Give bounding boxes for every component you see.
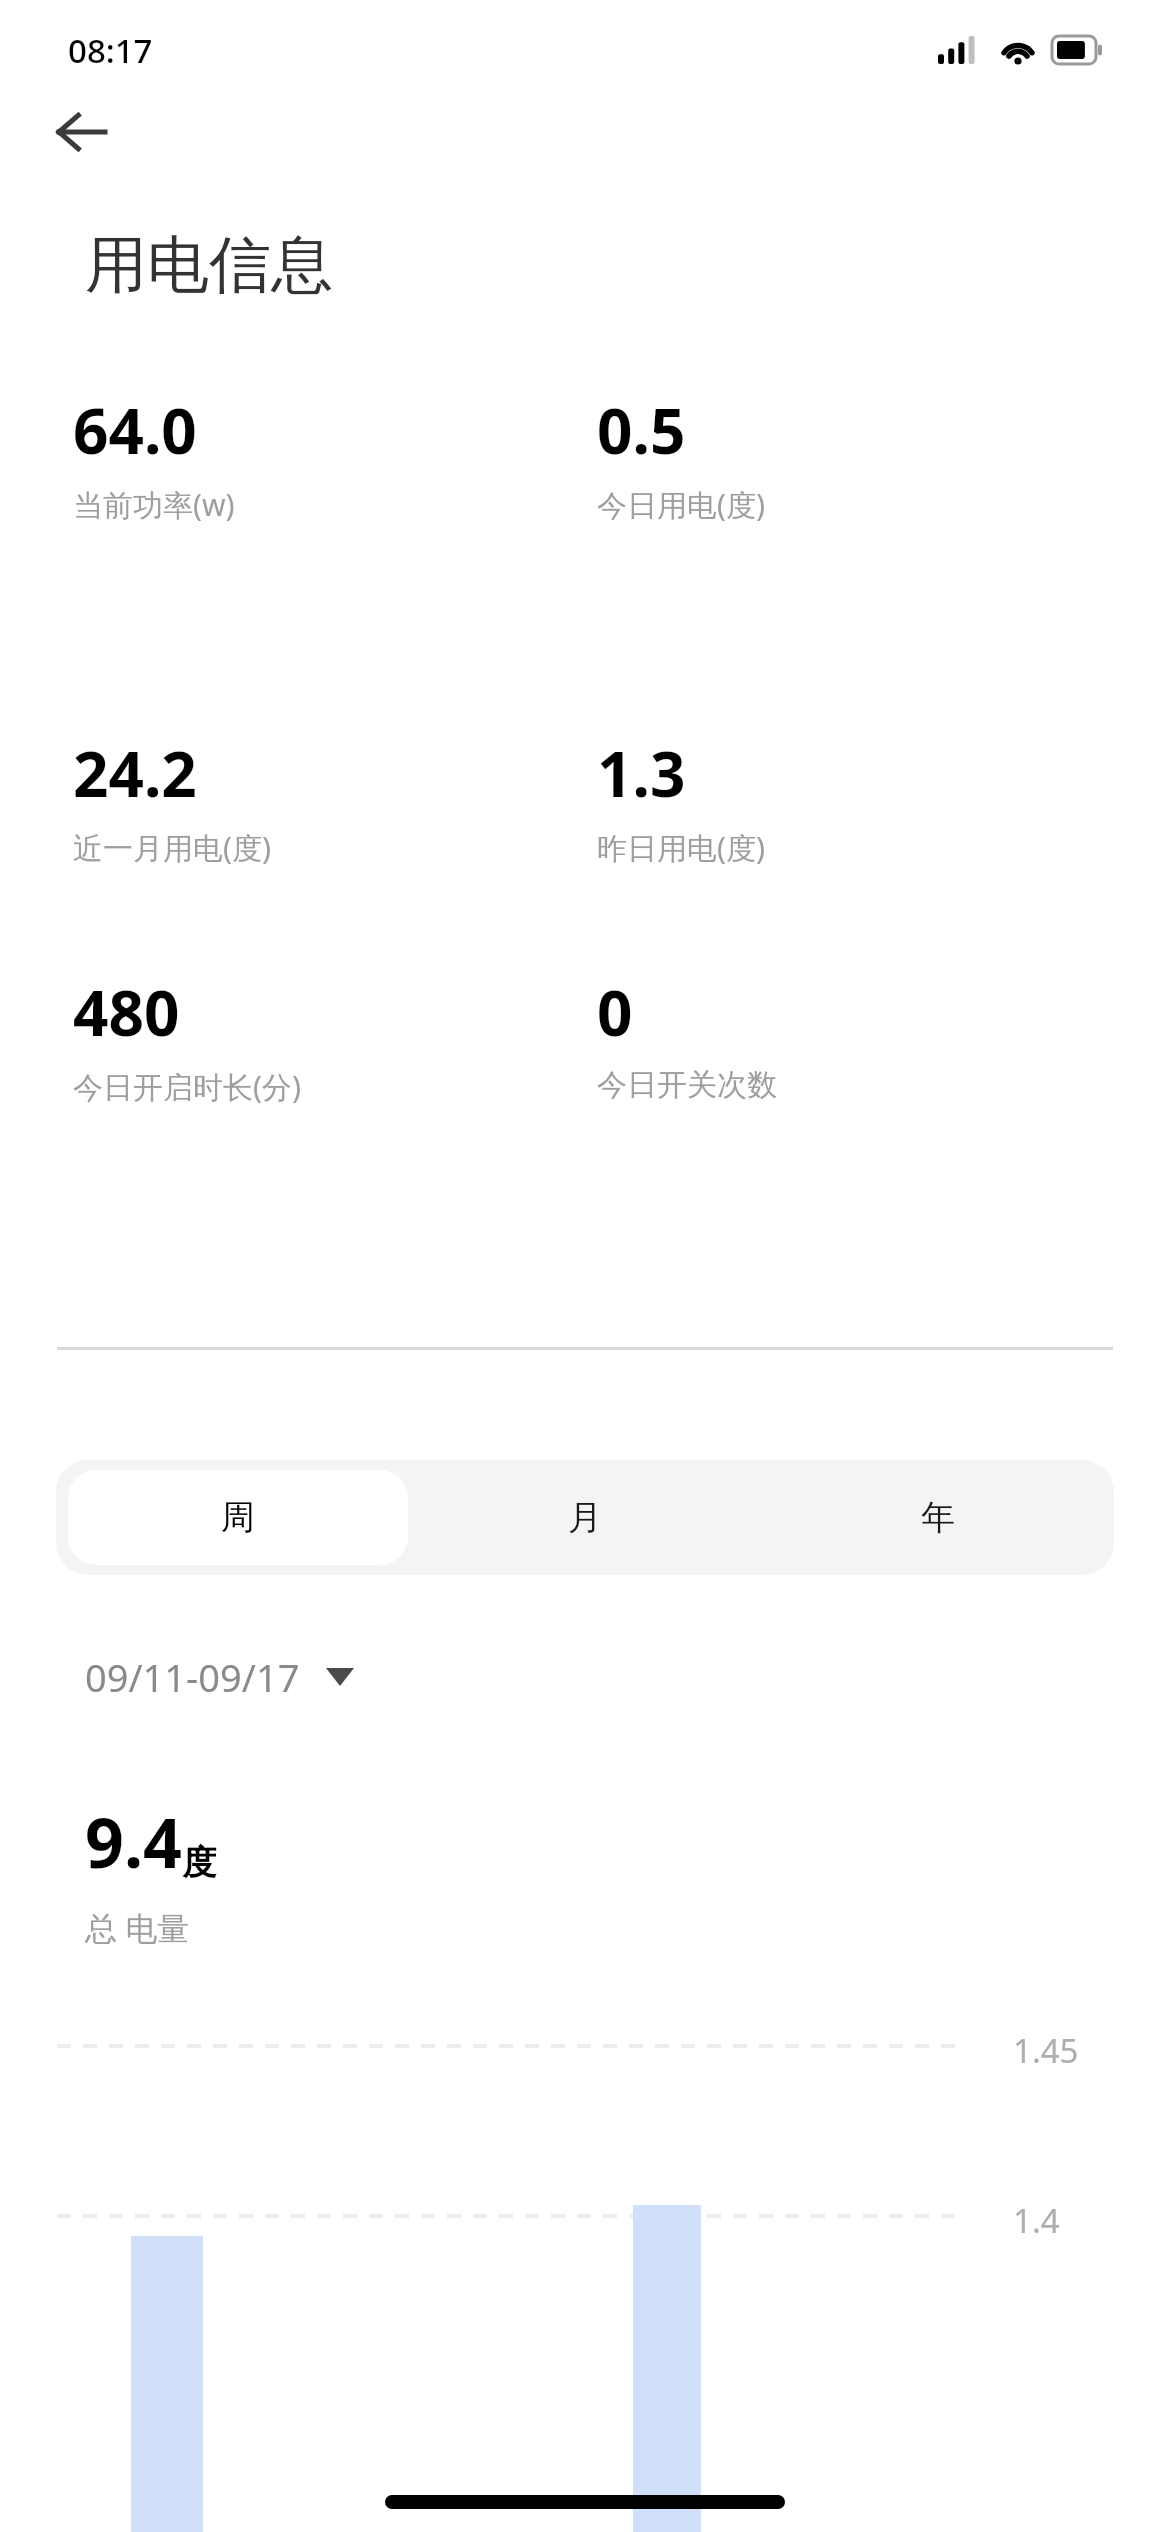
staticText: 度 [182, 1841, 216, 1884]
staticText: 09/11-09/17 [85, 1651, 300, 1703]
staticText: 1.45 [1013, 2028, 1079, 2073]
staticText: 用电信息 [85, 226, 333, 304]
staticText: 昨日用电(度) [597, 827, 765, 868]
button[interactable]: 周 [68, 1470, 408, 1565]
staticText: 480 [73, 970, 180, 1054]
staticText: 64.0 [73, 388, 197, 472]
button[interactable]: 年 [761, 1460, 1114, 1575]
staticText: 24.2 [73, 731, 197, 815]
button[interactable]: 09/11-09/17 [85, 1651, 354, 1703]
staticText: 月 [568, 1496, 602, 1539]
staticText: 08:17 [68, 28, 153, 73]
staticText: 年 [921, 1496, 955, 1539]
staticText: 1.3 [597, 731, 686, 815]
staticText: 0.5 [597, 388, 686, 472]
staticText: 总 电量 [85, 1906, 190, 1950]
staticText: 周 [221, 1496, 255, 1539]
staticText: 今日开关次数 [597, 1066, 777, 1104]
button[interactable]: Back [40, 90, 124, 174]
button[interactable]: 月 [408, 1460, 761, 1575]
staticText: 今日用电(度) [597, 484, 765, 525]
staticText: 0 [597, 970, 633, 1054]
staticText: 1.4 [1013, 2198, 1060, 2243]
staticText: 近一月用电(度) [73, 827, 271, 868]
staticText: 当前功率(w) [73, 484, 235, 525]
staticText: 今日开启时长(分) [73, 1066, 301, 1107]
staticText: 9.4 [85, 1795, 182, 1888]
